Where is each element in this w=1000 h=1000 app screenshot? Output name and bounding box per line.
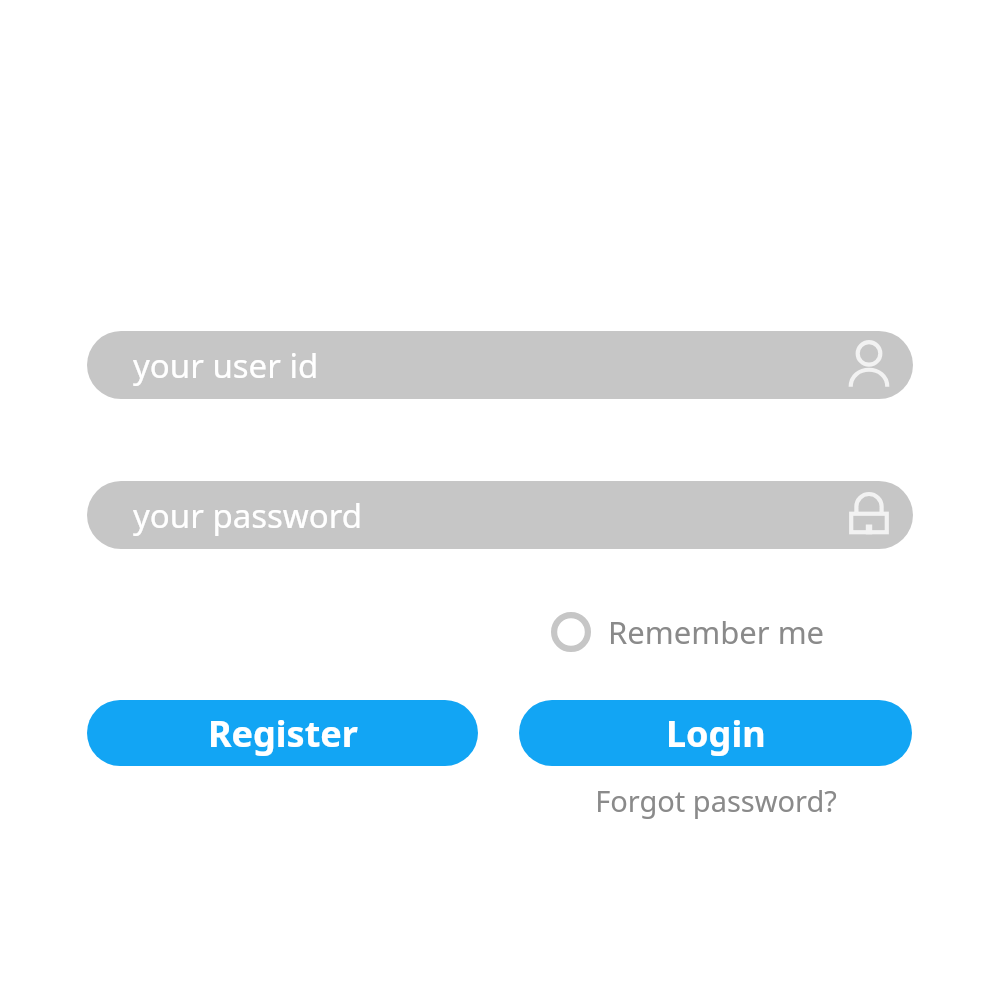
button[interactable]: Forgot password? <box>519 778 912 822</box>
button[interactable]: your password <box>87 481 913 549</box>
staticText: your password <box>133 493 362 538</box>
button[interactable]: Login <box>519 700 912 766</box>
button[interactable]: Register <box>87 700 478 766</box>
staticText: Forgot password? <box>595 781 837 820</box>
staticText: your user id <box>133 343 319 388</box>
other: User <box>840 336 898 394</box>
staticText: Register <box>208 709 358 758</box>
staticText: Login <box>666 709 766 758</box>
button[interactable]: your user id <box>87 331 913 399</box>
staticText: Remember me <box>608 611 825 653</box>
button[interactable]: Remember me <box>548 608 826 656</box>
other: Password <box>841 487 897 543</box>
